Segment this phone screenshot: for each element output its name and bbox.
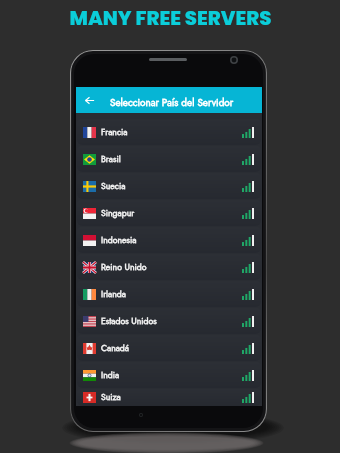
staticText: Suecia <box>101 180 126 193</box>
button[interactable]: Estados Unidos <box>77 308 261 334</box>
staticText: Irlanda <box>101 288 126 301</box>
staticText: Suiza <box>101 391 121 404</box>
staticText: Estados Unidos <box>101 315 157 328</box>
staticText: Brasil <box>101 153 121 166</box>
staticText: Reino Unido <box>101 261 147 274</box>
button[interactable]: India <box>77 362 261 388</box>
button[interactable]: Suiza <box>77 389 261 406</box>
button[interactable]: Singapur <box>77 200 261 226</box>
staticText: Indonesia <box>101 234 137 247</box>
button[interactable]: Reino Unido <box>77 254 261 280</box>
staticText: India <box>101 369 120 382</box>
button[interactable]: Irlanda <box>77 281 261 307</box>
button[interactable]: Brasil <box>77 146 261 172</box>
button[interactable]: Indonesia <box>77 227 261 253</box>
button[interactable]: Francia <box>77 119 261 145</box>
button[interactable]: Back <box>76 87 103 113</box>
button[interactable]: Canadá <box>77 335 261 361</box>
staticText: MANY FREE SERVERS <box>69 4 272 32</box>
staticText: Canadá <box>101 342 130 355</box>
staticText: Seleccionar País del Servidor <box>110 95 234 109</box>
staticText: Francia <box>101 126 128 139</box>
button[interactable]: Suecia <box>77 173 261 199</box>
staticText: Singapur <box>101 207 135 220</box>
